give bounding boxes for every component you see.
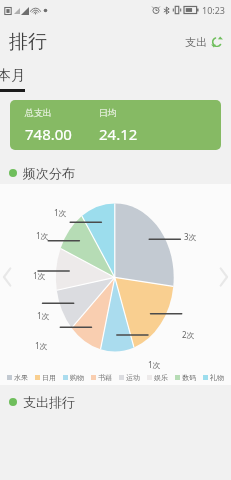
staticText: 748.00 [25,124,72,144]
button[interactable]: 娱乐 [147,373,168,382]
staticText: 1次 [33,270,46,281]
staticText: 娱乐 [154,373,168,382]
staticText: 支出 [185,35,207,49]
staticText: 10:23 [202,4,226,16]
staticText: 运动 [126,373,140,382]
staticText: 日均 [99,107,117,118]
button[interactable]: 支出 [177,29,231,55]
button[interactable]: 数码 [175,373,196,382]
other: Switch expense or income [211,36,223,48]
button[interactable]: 书籍 [91,373,112,382]
staticText: 2次 [182,329,195,340]
staticText: 1次 [36,230,49,241]
staticText: 1次 [54,207,67,218]
button[interactable]: 购物 [63,373,84,382]
button[interactable]: 本月 [0,67,29,92]
button[interactable]: 运动 [119,373,140,382]
staticText: 3次 [184,231,197,242]
staticText: 支出排行 [23,394,75,410]
staticText: 水果 [14,373,28,382]
staticText: 书籍 [98,373,112,382]
staticText: 24.12 [99,124,138,144]
staticText: 1次 [148,359,161,370]
button[interactable]: 总支出 [10,100,221,150]
staticText: 本月 [0,67,25,85]
staticText: 1次 [35,340,48,351]
other: Next period [217,265,231,289]
staticText: 总支出 [25,107,52,118]
other: Previous period [0,265,14,289]
staticText: 购物 [70,373,84,382]
staticText: 日用 [42,373,56,382]
staticText: 排行 [9,30,47,54]
staticText: 礼物 [210,373,224,382]
staticText: 数码 [182,373,196,382]
button[interactable]: 日用 [35,373,56,382]
button[interactable]: 礼物 [203,373,224,382]
staticText: 频次分布 [23,165,75,181]
staticText: 1次 [37,310,50,321]
button[interactable]: 水果 [7,373,28,382]
